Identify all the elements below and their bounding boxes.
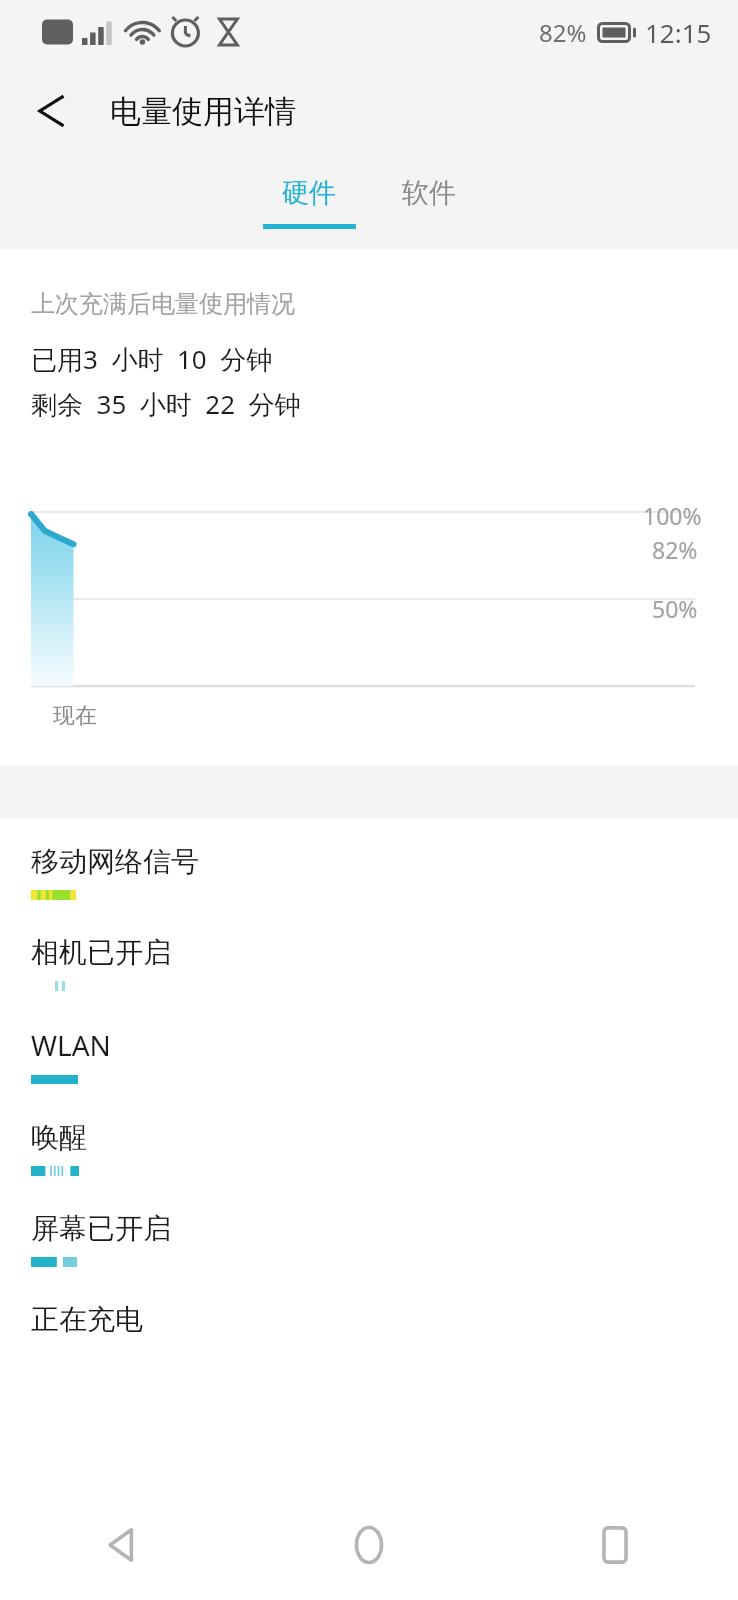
button[interactable]: WLAN <box>0 1022 738 1116</box>
button[interactable]: Home <box>246 1490 492 1600</box>
staticText: 12:15 <box>645 15 712 50</box>
staticText: 100% <box>643 500 702 531</box>
button[interactable]: Recents <box>492 1490 738 1600</box>
staticText: 屏幕已开启 <box>31 1211 171 1246</box>
button[interactable]: Back <box>0 1490 246 1600</box>
staticText: 软件 <box>402 176 456 210</box>
staticText: 正在充电 <box>31 1302 143 1337</box>
button[interactable]: 屏幕已开启 <box>0 1207 738 1298</box>
button[interactable]: 相机已开启 <box>0 931 738 1022</box>
button[interactable]: 硬件 <box>259 172 359 233</box>
staticText: 已用3 小时 10 分钟 <box>31 341 273 377</box>
staticText: 82% <box>652 534 698 565</box>
staticText: 唤醒 <box>31 1120 87 1155</box>
staticText: 上次充满后电量使用情况 <box>31 289 295 319</box>
button[interactable]: 软件 <box>379 172 479 233</box>
button[interactable]: Back <box>18 76 88 146</box>
staticText: WLAN <box>31 1026 111 1064</box>
staticText: 剩余 35 小时 22 分钟 <box>31 386 301 422</box>
staticText: 移动网络信号 <box>31 844 199 879</box>
staticText: 相机已开启 <box>31 935 171 970</box>
staticText: 82% <box>539 16 587 49</box>
staticText: 电量使用详情 <box>110 92 296 131</box>
button[interactable]: 唤醒 <box>0 1116 738 1207</box>
staticText: 50% <box>652 593 698 624</box>
staticText: 现在 <box>53 702 97 730</box>
button[interactable]: 移动网络信号 <box>0 840 738 931</box>
button[interactable]: 正在充电 <box>0 1298 738 1389</box>
staticText: 硬件 <box>282 176 336 210</box>
